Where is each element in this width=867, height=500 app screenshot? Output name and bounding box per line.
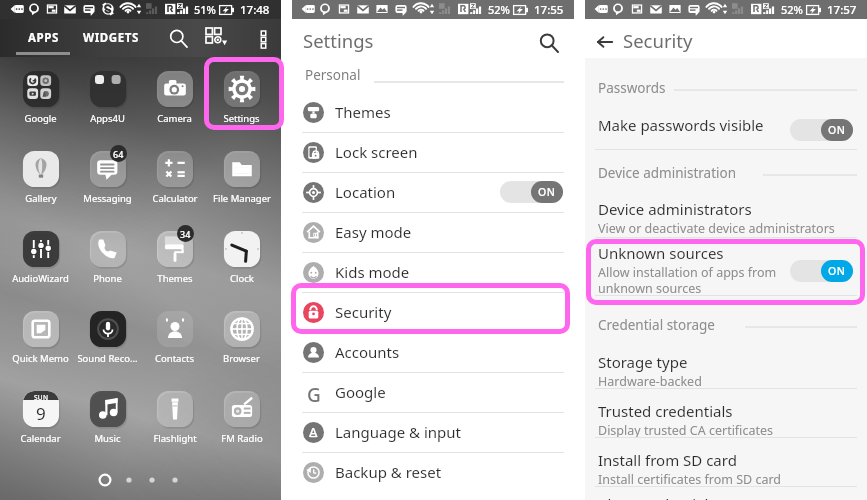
- staticText: Themes: [335, 102, 391, 122]
- staticText: Apps4U: [90, 112, 125, 125]
- button[interactable]: Search: [162, 19, 194, 57]
- button[interactable]: Easy mode: [292, 212, 574, 252]
- staticText: Clear credentials: [598, 494, 716, 500]
- button[interactable]: Calculator: [141, 144, 208, 214]
- staticText: 34: [180, 228, 191, 240]
- button[interactable]: Location: [292, 172, 574, 212]
- staticText: Contacts: [155, 352, 194, 365]
- staticText: View or deactivate device administrators: [598, 220, 835, 237]
- staticText: Allow installation of apps from unknown …: [598, 264, 777, 296]
- staticText: Browser: [223, 352, 260, 365]
- button[interactable]: Sort apps: [200, 19, 232, 57]
- button[interactable]: Backup & reset: [292, 452, 574, 492]
- staticText: Sound Reco...: [77, 352, 138, 365]
- staticText: Accounts: [335, 342, 400, 362]
- button[interactable]: Toggle Unknown sources: [790, 260, 853, 282]
- button[interactable]: Trusted credentials: [585, 396, 867, 438]
- staticText: Settings: [223, 112, 260, 125]
- staticText: Lock screen: [335, 142, 418, 162]
- button[interactable]: Messaging: [74, 144, 141, 214]
- staticText: Passwords: [598, 79, 666, 97]
- staticText: Credential storage: [598, 316, 715, 334]
- button[interactable]: FM Radio: [208, 384, 275, 454]
- staticText: Security: [335, 302, 392, 322]
- staticText: Personal: [305, 66, 361, 84]
- button[interactable]: Browser: [208, 304, 275, 374]
- staticText: Calendar: [20, 432, 61, 445]
- button[interactable]: SUN: [7, 384, 74, 454]
- button[interactable]: Back: [589, 26, 621, 58]
- staticText: Security: [623, 28, 693, 53]
- button[interactable]: Kids mode: [292, 252, 574, 292]
- button[interactable]: A: [292, 412, 574, 452]
- staticText: Trusted credentials: [598, 401, 733, 421]
- button[interactable]: WIDGETS: [72, 19, 150, 57]
- staticText: Easy mode: [335, 222, 412, 242]
- staticText: ON: [828, 264, 846, 278]
- staticText: A: [309, 423, 318, 441]
- staticText: Install from SD card: [598, 450, 737, 470]
- staticText: ON: [538, 185, 556, 199]
- button[interactable]: G: [292, 372, 574, 412]
- staticText: Clock: [230, 272, 254, 285]
- staticText: File Manager: [213, 192, 271, 205]
- staticText: Location: [335, 182, 396, 202]
- button[interactable]: Install from SD card: [585, 445, 867, 487]
- button[interactable]: Make passwords visible: [585, 110, 867, 150]
- staticText: 64: [113, 148, 124, 160]
- staticText: Gallery: [25, 192, 57, 205]
- button[interactable]: Flashlight: [141, 384, 208, 454]
- staticText: Install certificates from SD card: [598, 471, 782, 488]
- button[interactable]: Accounts: [292, 332, 574, 372]
- staticText: Device administrators: [598, 199, 752, 219]
- staticText: ON: [828, 123, 846, 137]
- staticText: Settings: [303, 28, 374, 53]
- button[interactable]: Toggle Make passwords visible: [790, 119, 853, 141]
- staticText: Camera: [157, 112, 192, 125]
- button[interactable]: Google: [7, 64, 74, 134]
- button[interactable]: Search: [533, 27, 565, 59]
- button[interactable]: Unknown sources: [585, 238, 867, 296]
- button[interactable]: Sound Reco...: [74, 304, 141, 374]
- staticText: Calculator: [152, 192, 198, 205]
- staticText: WIDGETS: [83, 30, 139, 46]
- staticText: 52%: [781, 2, 803, 17]
- button[interactable]: Music: [74, 384, 141, 454]
- staticText: FM Radio: [221, 432, 263, 445]
- button[interactable]: Clock: [208, 224, 275, 294]
- staticText: Google: [335, 382, 386, 402]
- staticText: Messaging: [83, 192, 132, 205]
- button[interactable]: File Manager: [208, 144, 275, 214]
- staticText: Make passwords visible: [598, 115, 764, 135]
- staticText: 17:48: [240, 2, 270, 18]
- button[interactable]: Toggle Location: [500, 181, 563, 203]
- button[interactable]: Storage type: [585, 347, 867, 389]
- staticText: Kids mode: [335, 262, 410, 282]
- button[interactable]: Themes: [141, 224, 208, 294]
- button[interactable]: Security: [292, 292, 574, 332]
- staticText: 17:57: [827, 2, 857, 18]
- button[interactable]: More options: [248, 19, 278, 57]
- staticText: Display trusted CA certificates: [598, 422, 773, 439]
- button[interactable]: Lock screen: [292, 132, 574, 172]
- button[interactable]: Device administrators: [585, 194, 867, 238]
- button[interactable]: Settings: [208, 64, 275, 134]
- button[interactable]: Clear credentials: [585, 489, 867, 500]
- button[interactable]: AudioWizard: [7, 224, 74, 294]
- button[interactable]: Camera: [141, 64, 208, 134]
- staticText: Quick Memo: [12, 352, 69, 365]
- button[interactable]: Apps4U: [74, 64, 141, 134]
- staticText: Backup & reset: [335, 462, 442, 482]
- staticText: 51%: [194, 2, 216, 17]
- button[interactable]: Themes: [292, 92, 574, 132]
- staticText: Themes: [157, 272, 193, 285]
- staticText: Language & input: [335, 422, 461, 442]
- staticText: APPS: [28, 30, 59, 46]
- staticText: Device administration: [598, 164, 737, 182]
- staticText: Storage type: [598, 352, 688, 372]
- button[interactable]: Quick Memo: [7, 304, 74, 374]
- button[interactable]: APPS: [10, 19, 77, 57]
- button[interactable]: Gallery: [7, 144, 74, 214]
- button[interactable]: Contacts: [141, 304, 208, 374]
- button[interactable]: Phone: [74, 224, 141, 294]
